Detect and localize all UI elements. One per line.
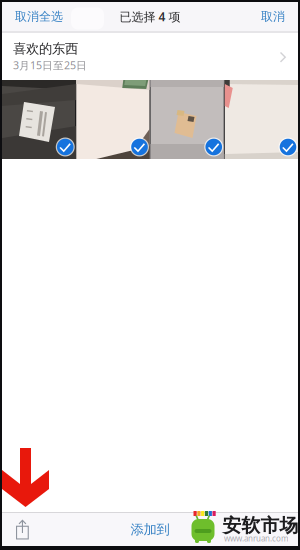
staticText: 安软市场 xyxy=(222,514,298,537)
button[interactable]: 添加到 xyxy=(121,513,178,546)
button[interactable]: Selected photo xyxy=(225,80,298,159)
button[interactable]: Selected photo xyxy=(76,80,149,159)
button[interactable]: Share xyxy=(2,513,41,546)
button[interactable]: 喜欢的东西 xyxy=(2,33,298,80)
staticText: 取消全选 xyxy=(15,9,63,24)
button[interactable]: 取消 xyxy=(253,2,298,31)
staticText: 喜欢的东西 xyxy=(13,41,78,57)
staticText: 添加到 xyxy=(130,521,169,538)
staticText: 取消 xyxy=(261,9,285,24)
staticText: www.anruan.com xyxy=(224,533,288,544)
staticText: 已选择 4 项 xyxy=(119,8,180,24)
button[interactable]: 取消全选 xyxy=(2,2,71,31)
staticText: 3月15日至25日 xyxy=(13,58,87,72)
button[interactable]: Selected photo xyxy=(2,80,75,159)
button[interactable]: Selected photo xyxy=(150,80,224,159)
